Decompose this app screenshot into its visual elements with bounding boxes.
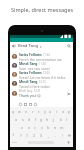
staticText: d	[28, 117, 31, 122]
staticText: p	[68, 109, 71, 114]
button[interactable]: f	[33, 116, 38, 122]
staticText: 11:24	[43, 53, 50, 57]
staticText: 11:30	[39, 62, 46, 66]
staticText: j	[53, 117, 54, 122]
button[interactable]: g	[39, 116, 44, 122]
staticText: v	[41, 125, 43, 130]
staticText: !	[62, 133, 63, 138]
button[interactable]: ,	[46, 132, 51, 138]
staticText: o	[62, 109, 65, 114]
button[interactable]: p	[67, 108, 72, 114]
button[interactable]: x	[26, 124, 31, 130]
button[interactable]: r	[30, 108, 35, 114]
staticText: Mindi Tang 12:31	[19, 89, 41, 93]
staticText: w	[18, 109, 21, 114]
button[interactable]: n	[53, 124, 58, 130]
staticText: ▾	[40, 45, 42, 48]
button[interactable]: l	[64, 116, 69, 122]
button[interactable]: Numbers	[12, 140, 17, 145]
staticText: Mindi Tang	[19, 79, 38, 84]
button[interactable]: ?	[18, 132, 23, 138]
button[interactable]: 3	[39, 132, 44, 138]
staticText: x	[28, 125, 30, 130]
staticText: ,	[48, 133, 49, 138]
staticText: 12:15	[39, 80, 46, 84]
button[interactable]: c	[32, 124, 37, 130]
button[interactable]: v	[39, 124, 44, 130]
button[interactable]: 1	[25, 132, 30, 138]
staticText: s	[22, 117, 24, 122]
button[interactable]: m	[59, 124, 64, 130]
button[interactable]: o	[61, 108, 66, 114]
staticText: Mindi Tang	[19, 61, 38, 66]
staticText: Here's the presentation we discussed	[19, 57, 71, 61]
button[interactable]: k	[58, 116, 63, 122]
button[interactable]: z	[19, 124, 24, 130]
button[interactable]: q	[11, 108, 16, 114]
button[interactable]: Backspace	[67, 131, 72, 139]
button[interactable]: 2	[32, 132, 37, 138]
button[interactable]: u	[48, 108, 53, 114]
button[interactable]: e	[24, 108, 29, 114]
button[interactable]: camera	[33, 102, 37, 106]
staticText: Great! Let me know if it helps	[19, 75, 66, 79]
button[interactable]: a	[14, 116, 19, 122]
staticText: l	[66, 117, 67, 122]
button[interactable]: Shift	[11, 131, 16, 139]
button[interactable]: Send	[66, 91, 71, 96]
staticText: y	[44, 109, 46, 114]
staticText: g	[40, 117, 43, 122]
staticText: Thank you! 😊	[19, 93, 41, 98]
button[interactable]: Search	[65, 42, 73, 50]
button[interactable]: j	[51, 116, 56, 122]
button[interactable]: w	[17, 108, 22, 114]
staticText: n	[54, 125, 57, 130]
staticText: Sure, see you soon!	[19, 66, 50, 70]
button[interactable]: t	[36, 108, 41, 114]
staticText: Brad Tang	[18, 43, 39, 49]
staticText: h	[46, 117, 49, 122]
button[interactable]: Back	[10, 42, 18, 50]
staticText: Simple, direct messages	[11, 6, 74, 13]
button[interactable]: h	[45, 116, 50, 122]
staticText: 3	[40, 133, 43, 138]
button[interactable]: sticker	[23, 102, 27, 106]
button[interactable]: y	[42, 108, 47, 114]
button[interactable]: Swiss Fellows	[10, 52, 73, 61]
staticText: q	[12, 109, 15, 114]
button[interactable]: Swiss Fellows	[10, 70, 73, 79]
button[interactable]: .	[53, 132, 58, 138]
button[interactable]: gif	[28, 102, 32, 106]
staticText: z	[21, 125, 23, 130]
staticText: Swiss Fellows	[19, 52, 42, 57]
staticText: e	[25, 109, 28, 114]
staticText: t	[38, 109, 40, 114]
button[interactable]: emoji	[18, 102, 22, 106]
staticText: 12:02	[43, 71, 50, 75]
button[interactable]: b	[46, 124, 51, 130]
button[interactable]: d	[27, 116, 32, 122]
staticText: ?	[20, 133, 22, 138]
staticText: i	[56, 109, 57, 114]
staticText: .	[55, 133, 56, 138]
staticText: f	[35, 117, 37, 122]
button[interactable]: s	[20, 116, 25, 122]
button[interactable]: Microphone	[66, 140, 71, 145]
button[interactable]: Mindi Tang	[10, 79, 73, 88]
staticText: a	[15, 117, 18, 122]
staticText: m	[60, 125, 64, 130]
staticText: Typed it here today	[19, 84, 50, 88]
staticText: ⇧	[12, 133, 15, 137]
staticText: ?123	[12, 141, 17, 144]
staticText: b	[47, 125, 50, 130]
staticText: 2	[33, 133, 36, 138]
staticText: u	[49, 109, 52, 114]
button[interactable]: Mindi Tang	[10, 61, 73, 70]
button[interactable]: Mindi Tang 12:31	[10, 89, 73, 98]
staticText: 1	[26, 133, 29, 138]
staticText: Swiss Fellows	[19, 70, 42, 75]
button[interactable]: i	[54, 108, 59, 114]
staticText: c	[34, 125, 36, 130]
button[interactable]: !	[60, 132, 65, 138]
